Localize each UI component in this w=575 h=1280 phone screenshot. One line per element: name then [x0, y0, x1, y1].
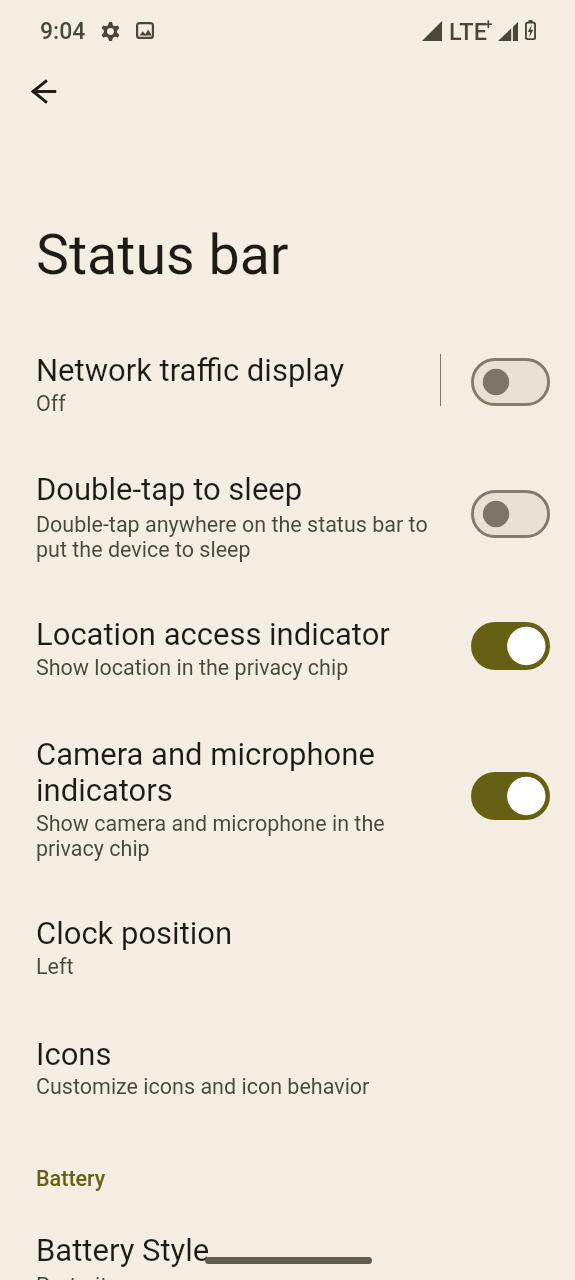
button[interactable]: Double-tap to sleep switch, off	[471, 490, 550, 538]
button[interactable]: Icons	[0, 1007, 575, 1130]
button[interactable]: Location access indicator	[0, 589, 575, 708]
staticText: +	[484, 15, 493, 33]
button[interactable]: Battery Style	[0, 1205, 575, 1280]
button[interactable]: Camera and microphone indicators switch,…	[471, 772, 550, 820]
staticText: Location access indicator	[36, 616, 456, 652]
staticText: Camera and microphone indicators	[36, 736, 456, 808]
button[interactable]: Camera and microphone indicators	[0, 708, 575, 888]
staticText: Clock position	[36, 915, 456, 951]
staticText: Left	[36, 954, 456, 979]
button[interactable]: Back	[19, 66, 69, 116]
staticText: Battery	[36, 1166, 106, 1191]
staticText: Portrait	[36, 1273, 456, 1280]
button[interactable]: Double-tap to sleep	[0, 443, 575, 589]
button[interactable]: Location access indicator switch, on	[471, 622, 550, 670]
button[interactable]: Network traffic display switch, off	[471, 358, 550, 406]
staticText: Status bar	[36, 223, 289, 288]
staticText: Double-tap to sleep	[36, 471, 456, 507]
staticText: Icons	[36, 1036, 456, 1072]
staticText: Double-tap anywhere on the status bar to…	[36, 512, 456, 562]
staticText: 9:04	[40, 18, 86, 45]
staticText: LTE	[449, 18, 487, 46]
button[interactable]: Clock position	[0, 888, 575, 1007]
button[interactable]: Network traffic display	[0, 341, 575, 443]
staticText: Off	[36, 391, 456, 416]
staticText: Customize icons and icon behavior	[36, 1074, 456, 1099]
staticText: Show location in the privacy chip	[36, 655, 456, 680]
staticText: Battery Style	[36, 1232, 456, 1268]
staticText: Show camera and microphone in the privac…	[36, 811, 456, 861]
staticText: Network traffic display	[36, 352, 456, 388]
